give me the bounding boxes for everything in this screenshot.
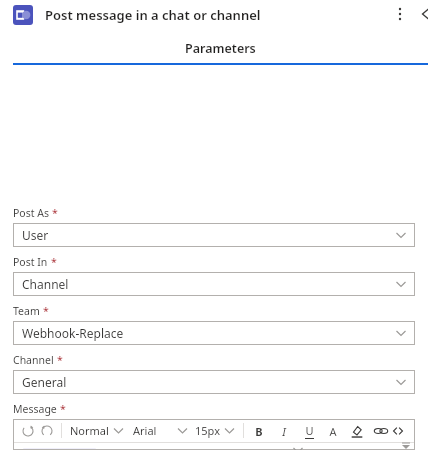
button[interactable]: Code [391, 424, 405, 438]
staticText: * [51, 255, 57, 269]
staticText: Arial [133, 423, 157, 438]
button[interactable]: Undo [21, 424, 35, 438]
button[interactable]: Webhook-Replace [13, 321, 415, 345]
staticText: * [57, 353, 63, 367]
button[interactable]: 15px [195, 423, 235, 438]
staticText: Team [13, 304, 40, 318]
button[interactable]: Collapse [412, 2, 428, 26]
button[interactable]: Channel [13, 272, 415, 296]
staticText: A [329, 424, 337, 439]
button[interactable]: More options [388, 2, 412, 26]
staticText: Channel [13, 353, 54, 367]
button[interactable]: I [278, 422, 290, 440]
staticText: * [52, 206, 58, 220]
staticText: Parameters [185, 40, 256, 57]
staticText: U [305, 423, 314, 438]
button[interactable]: Parameters [13, 40, 428, 65]
staticText: 15px [195, 423, 220, 438]
staticText: Message [13, 402, 57, 416]
staticText: * [60, 402, 66, 416]
button[interactable]: A [327, 422, 339, 440]
staticText: I [282, 424, 286, 439]
staticText: General [22, 374, 67, 390]
button[interactable]: General [13, 370, 415, 394]
button[interactable]: Normal [70, 423, 124, 438]
staticText: Post As [13, 206, 49, 220]
staticText: B [255, 424, 263, 439]
button[interactable]: U [303, 422, 315, 440]
button[interactable]: Highlight [350, 424, 364, 438]
staticText: Post In [13, 255, 48, 269]
button[interactable]: Arial [133, 423, 188, 438]
staticText: Channel [22, 276, 69, 292]
button[interactable]: B [253, 422, 265, 440]
staticText: User [22, 227, 49, 243]
staticText: Webhook-Replace [22, 325, 124, 341]
staticText: * [43, 304, 49, 318]
button[interactable]: User [13, 223, 415, 247]
staticText: Post message in a chat or channel [45, 6, 261, 24]
button[interactable]: Redo [40, 424, 54, 438]
button[interactable]: Link [374, 424, 388, 438]
staticText: Normal [70, 423, 109, 438]
